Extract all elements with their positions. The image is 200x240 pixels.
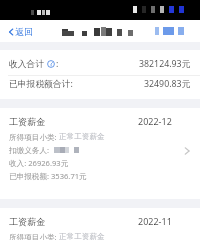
button[interactable]: 工资薪金 [0, 208, 200, 240]
staticText: 2022-11 [138, 215, 172, 227]
staticText: 返回 [15, 26, 33, 37]
staticText: 382124.93元 [139, 58, 191, 70]
button[interactable]: 收入合计 [0, 50, 200, 75]
staticText: 收入合计 [9, 59, 45, 70]
staticText: 工资薪金 [9, 116, 46, 127]
other: View detail [184, 146, 190, 156]
staticText: 32490.83元 [144, 78, 191, 90]
staticText: 所得项目小类: [9, 132, 59, 142]
staticText: 正常工资薪金 [59, 232, 105, 240]
staticText: 收入: 26926.93元 [9, 158, 69, 168]
staticText: 扣缴义务人: [9, 145, 51, 155]
staticText: 2022-12 [138, 115, 172, 127]
button[interactable]: 工资薪金 [0, 108, 200, 199]
button[interactable]: 返回 [6, 22, 35, 41]
staticText: 所得项目小类: [9, 232, 59, 240]
button[interactable]: More options [154, 25, 185, 37]
button[interactable]: 已申报税额合计: [0, 76, 200, 99]
staticText: 已申报税额: 3536.71元 [9, 171, 87, 181]
staticText: 正常工资薪金 [59, 132, 105, 142]
staticText: 工资薪金 [9, 216, 46, 227]
staticText: : [56, 58, 59, 70]
staticText: 已申报税额合计: [9, 78, 73, 90]
